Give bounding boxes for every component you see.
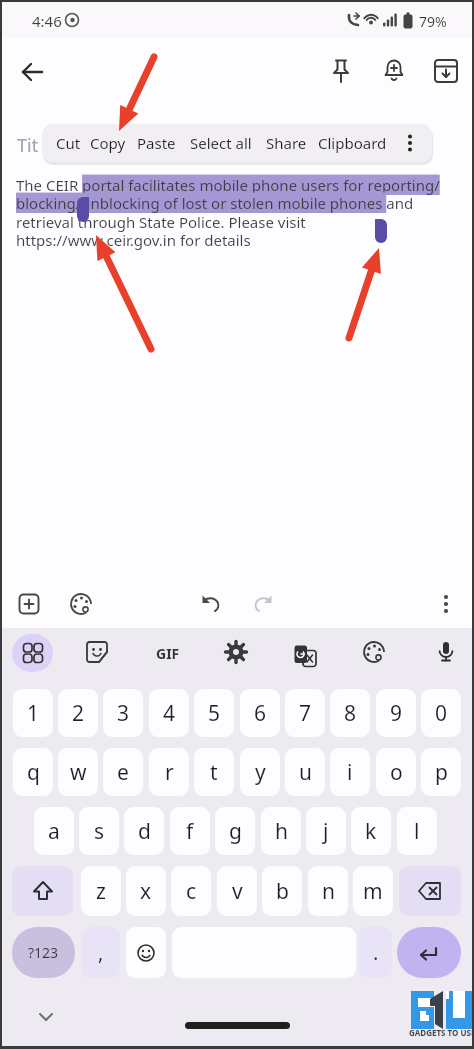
- button[interactable]: [379, 56, 409, 86]
- button[interactable]: [433, 639, 459, 665]
- button[interactable]: [12, 634, 53, 672]
- button[interactable]: y: [240, 748, 280, 796]
- button[interactable]: 3: [103, 689, 143, 737]
- staticText: g: [229, 817, 242, 846]
- button[interactable]: c: [171, 866, 211, 916]
- button[interactable]: e: [103, 748, 143, 796]
- staticText: h: [275, 817, 288, 846]
- staticText: 9: [390, 699, 403, 728]
- button[interactable]: Share: [266, 124, 307, 162]
- button[interactable]: 1: [13, 689, 53, 737]
- button[interactable]: t: [194, 748, 234, 796]
- button[interactable]: j: [306, 807, 346, 855]
- staticText: i: [347, 758, 353, 787]
- button[interactable]: d: [124, 807, 164, 855]
- button[interactable]: [126, 927, 166, 978]
- button[interactable]: u: [285, 748, 325, 796]
- button[interactable]: 9: [376, 689, 416, 737]
- staticText: r: [165, 758, 174, 787]
- staticText: ,: [98, 939, 104, 966]
- button[interactable]: q: [13, 748, 53, 796]
- button[interactable]: h: [261, 807, 301, 855]
- button[interactable]: f: [170, 807, 210, 855]
- button[interactable]: m: [353, 866, 393, 916]
- staticText: z: [96, 877, 106, 906]
- button[interactable]: b: [262, 866, 302, 916]
- button[interactable]: [399, 866, 461, 916]
- button[interactable]: 4: [149, 689, 189, 737]
- button[interactable]: 6: [240, 689, 280, 737]
- button[interactable]: k: [351, 807, 391, 855]
- button[interactable]: [37, 1008, 55, 1026]
- button[interactable]: [326, 56, 356, 86]
- button[interactable]: [198, 590, 224, 616]
- button[interactable]: GIF: [150, 642, 186, 664]
- button[interactable]: [431, 56, 461, 86]
- button[interactable]: [250, 590, 276, 616]
- staticText: y: [255, 758, 266, 787]
- button[interactable]: [223, 639, 249, 665]
- staticText: n: [322, 877, 335, 906]
- button[interactable]: r: [149, 748, 189, 796]
- staticText: 8: [344, 699, 357, 728]
- button[interactable]: o: [376, 748, 416, 796]
- button[interactable]: g: [215, 807, 255, 855]
- button[interactable]: [294, 645, 317, 668]
- button[interactable]: w: [58, 748, 98, 796]
- button[interactable]: ?123: [12, 927, 75, 978]
- button[interactable]: [12, 866, 73, 916]
- button[interactable]: [15, 55, 49, 89]
- button[interactable]: n: [308, 866, 348, 916]
- staticText: u: [299, 758, 312, 787]
- staticText: Select all: [190, 133, 252, 153]
- button[interactable]: .: [359, 927, 392, 978]
- staticText: 79%: [419, 12, 447, 31]
- button[interactable]: i: [330, 748, 370, 796]
- staticText: Copy: [90, 133, 126, 153]
- button[interactable]: Clipboard: [318, 124, 387, 162]
- button[interactable]: [397, 927, 461, 978]
- staticText: Clipboard: [318, 133, 387, 153]
- staticText: b: [276, 877, 289, 906]
- button[interactable]: Paste: [137, 124, 176, 162]
- staticText: t: [210, 758, 218, 787]
- button[interactable]: z: [81, 866, 121, 916]
- staticText: f: [186, 817, 194, 846]
- staticText: ?123: [28, 943, 59, 962]
- button[interactable]: p: [421, 748, 461, 796]
- button[interactable]: [68, 591, 94, 617]
- button[interactable]: Select all: [190, 124, 252, 162]
- button[interactable]: 0: [421, 689, 461, 737]
- button[interactable]: Cut: [56, 124, 81, 162]
- staticText: e: [117, 758, 129, 787]
- staticText: x: [140, 877, 152, 906]
- button[interactable]: l: [397, 807, 437, 855]
- button[interactable]: [16, 591, 42, 617]
- button[interactable]: x: [126, 866, 166, 916]
- button[interactable]: [185, 1022, 290, 1029]
- staticText: 4: [163, 699, 176, 728]
- staticText: m: [363, 877, 383, 906]
- button[interactable]: [84, 639, 110, 665]
- button[interactable]: ,: [81, 927, 120, 978]
- button[interactable]: [400, 133, 420, 153]
- staticText: 5: [208, 699, 221, 728]
- button[interactable]: v: [217, 866, 257, 916]
- staticText: The CEIR portal facilitates mobile phone…: [16, 175, 440, 195]
- button[interactable]: 2: [58, 689, 98, 737]
- staticText: Tit: [17, 133, 39, 158]
- button[interactable]: s: [79, 807, 119, 855]
- button[interactable]: [361, 639, 387, 665]
- button[interactable]: a: [34, 807, 74, 855]
- staticText: 7: [299, 699, 312, 728]
- button[interactable]: 5: [194, 689, 234, 737]
- button[interactable]: Copy: [90, 124, 126, 162]
- staticText: d: [138, 817, 151, 846]
- staticText: https://www.ceir.gov.in for details: [16, 230, 251, 250]
- staticText: o: [390, 758, 403, 787]
- staticText: q: [27, 758, 40, 787]
- button[interactable]: 7: [285, 689, 325, 737]
- button[interactable]: [435, 593, 457, 615]
- button[interactable]: 8: [330, 689, 370, 737]
